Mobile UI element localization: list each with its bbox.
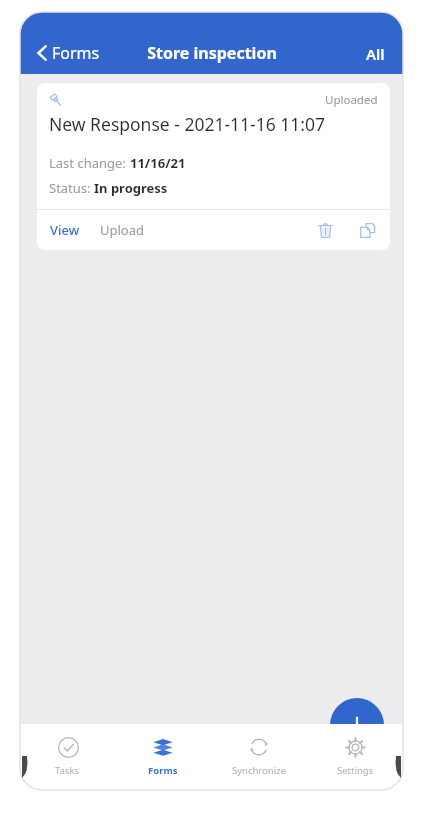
staticText: All: [366, 44, 385, 64]
staticText: Forms: [148, 764, 178, 777]
staticText: New Response - 2021-11-16 11:07: [49, 112, 326, 136]
button[interactable]: Synchronize: [211, 732, 307, 779]
button[interactable]: Settings: [307, 732, 403, 779]
button[interactable]: View: [45, 217, 85, 243]
button[interactable]: Duplicate: [352, 215, 382, 245]
staticText: Forms: [52, 42, 100, 64]
staticText: Status:: [49, 179, 94, 197]
staticText: Tasks: [55, 764, 80, 777]
staticText: Settings: [337, 764, 374, 777]
staticText: 11/16/21: [130, 154, 186, 172]
staticText: Uploaded: [325, 92, 378, 108]
button[interactable]: Uploaded: [37, 83, 390, 250]
button[interactable]: Forms: [115, 732, 211, 779]
staticText: Upload: [100, 221, 145, 239]
button[interactable]: Forms: [32, 38, 104, 68]
staticText: Last change:: [49, 154, 130, 172]
button[interactable]: Add new response: [330, 698, 384, 752]
button[interactable]: Delete: [310, 215, 340, 245]
staticText: Synchronize: [232, 764, 286, 777]
button[interactable]: Upload: [95, 217, 150, 243]
staticText: In progress: [94, 179, 168, 197]
staticText: View: [50, 221, 80, 239]
button[interactable]: Tasks: [20, 732, 115, 779]
staticText: Store inspection: [147, 42, 277, 64]
button[interactable]: All: [360, 40, 391, 68]
